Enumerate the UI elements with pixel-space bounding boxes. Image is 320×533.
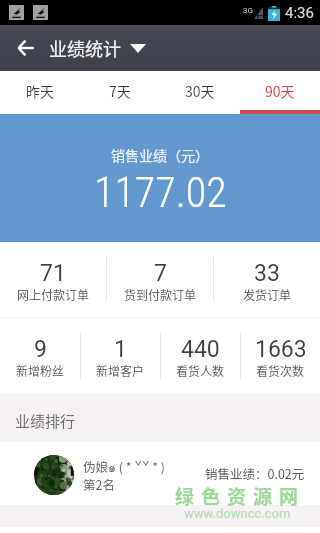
staticText: 71 xyxy=(40,260,66,287)
button[interactable]: 业绩统计 xyxy=(49,28,146,68)
staticText: 7 xyxy=(154,260,167,287)
staticText: 新增粉丝 xyxy=(16,362,65,379)
staticText: 9 xyxy=(34,336,47,363)
staticText: 看货次数 xyxy=(256,362,305,379)
staticText: 昨天 xyxy=(26,81,54,101)
button[interactable]: 90天 xyxy=(240,71,320,110)
button[interactable]: 7 xyxy=(107,242,213,317)
staticText: 绿色资源网 xyxy=(175,482,306,510)
button[interactable]: 71 xyxy=(0,242,106,317)
staticText: 看货人数 xyxy=(176,362,225,379)
button[interactable]: 9 xyxy=(0,318,80,394)
staticText: 30天 xyxy=(185,81,215,101)
staticText: 1177.02 xyxy=(94,168,227,217)
staticText: 第2名 xyxy=(83,475,115,493)
staticText: 新增客户 xyxy=(96,362,145,379)
button[interactable]: 昨天 xyxy=(0,71,80,110)
staticText: 4:36 xyxy=(285,4,314,22)
button[interactable]: 440 xyxy=(161,318,240,394)
staticText: 33 xyxy=(254,260,280,287)
staticText: 销售业绩（元） xyxy=(111,145,209,165)
staticText: 网上付款订单 xyxy=(17,286,90,303)
button[interactable]: 30天 xyxy=(160,71,240,110)
staticText: 业绩统计 xyxy=(49,35,121,61)
button[interactable]: Back xyxy=(10,31,40,65)
button[interactable]: 33 xyxy=(214,242,320,317)
staticText: 3G xyxy=(243,6,253,15)
staticText: www.downcc.com xyxy=(184,506,291,521)
staticText: 货到付款订单 xyxy=(124,286,197,303)
button[interactable]: 伪娘๑ ( * ˇˇ * ) xyxy=(0,442,320,505)
staticText: 440 xyxy=(181,336,220,363)
staticText: 90天 xyxy=(265,81,295,101)
button[interactable]: 1663 xyxy=(241,318,320,394)
button[interactable]: 1 xyxy=(81,318,160,394)
staticText: 业绩排行 xyxy=(15,410,76,432)
staticText: 伪娘๑ ( * ˇˇ * ) xyxy=(83,457,166,477)
staticText: 发货订单 xyxy=(243,286,292,303)
staticText: 7天 xyxy=(109,81,131,101)
button[interactable]: 7天 xyxy=(80,71,160,110)
staticText: 1 xyxy=(114,336,127,363)
staticText: 1663 xyxy=(255,336,307,363)
staticText: 销售业绩：0.02元 xyxy=(205,464,305,482)
